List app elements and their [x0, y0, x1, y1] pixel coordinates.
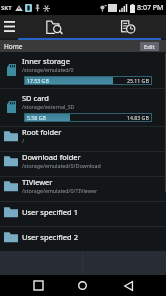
staticText: User specified 2 — [22, 232, 78, 242]
button[interactable]: Root folder — [0, 127, 166, 151]
staticText: /storage/emulated/0/TIViewer — [22, 187, 98, 194]
staticText: Home — [4, 42, 23, 51]
staticText: 25.11 GB — [127, 77, 149, 84]
staticText: User specified 1 — [22, 207, 78, 217]
button[interactable]: Recent files — [117, 15, 139, 38]
staticText: /storage/emulated/0/Download — [22, 162, 101, 169]
staticText: 17.53 GB — [27, 77, 49, 84]
staticText: /storage/external_SD — [22, 103, 75, 110]
staticText: Inner storage — [22, 56, 70, 66]
staticText: 5.58 GB — [27, 114, 46, 121]
button[interactable]: Back — [114, 275, 142, 296]
staticText: SKT — [1, 4, 12, 12]
button[interactable]: Download folder — [0, 152, 166, 176]
button[interactable]: TIViewer — [0, 177, 166, 201]
button[interactable]: Search folder — [43, 15, 66, 38]
button[interactable]: Edit — [140, 42, 159, 51]
button[interactable]: Inner storage — [0, 52, 166, 88]
staticText: Download folder — [22, 152, 81, 162]
staticText: /storage/emulated/0 — [22, 66, 74, 73]
button[interactable]: Home — [68, 275, 96, 296]
button[interactable]: User specified 2 — [0, 227, 166, 251]
staticText: 14.83 GB — [127, 114, 149, 121]
button[interactable]: User specified 1 — [0, 202, 166, 226]
staticText: / — [22, 137, 24, 144]
button[interactable]: SD card — [0, 89, 166, 126]
button[interactable]: Recents — [24, 275, 52, 296]
staticText: 8:07 PM — [137, 3, 164, 13]
staticText: Edit — [144, 43, 155, 51]
staticText: SD card — [22, 93, 49, 103]
staticText: TIViewer — [22, 177, 53, 187]
staticText: Root folder — [22, 127, 62, 137]
button[interactable]: Menu — [0, 15, 18, 38]
